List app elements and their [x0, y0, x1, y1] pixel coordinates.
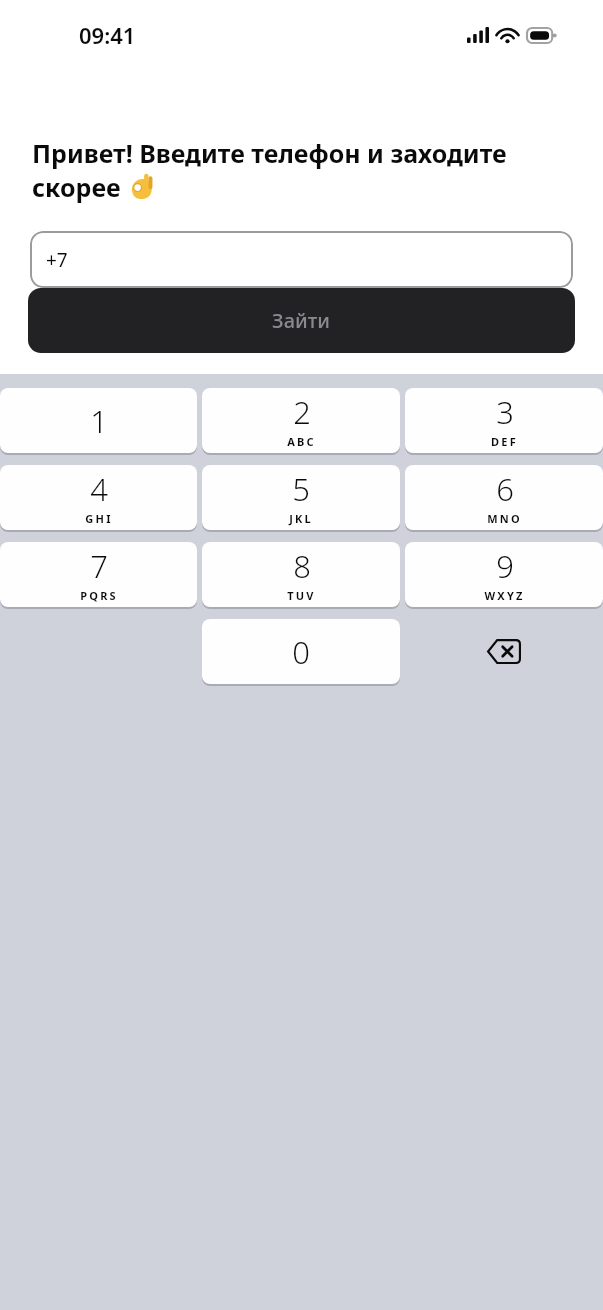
- staticText: 5: [292, 468, 310, 510]
- staticText: Привет! Введите телефон и заходите: [32, 136, 507, 170]
- staticText: 3: [496, 391, 514, 433]
- staticText: GHI: [85, 511, 113, 526]
- staticText: PQRS: [80, 588, 118, 603]
- staticText: ABC: [287, 434, 316, 449]
- button[interactable]: 2: [202, 388, 400, 453]
- button[interactable]: 9: [405, 542, 603, 607]
- staticText: TUV: [287, 588, 316, 603]
- button[interactable]: Зайти: [28, 288, 575, 353]
- staticText: DEF: [491, 434, 518, 449]
- button[interactable]: 3: [405, 388, 603, 453]
- button[interactable]: 0: [202, 619, 400, 684]
- staticText: 7: [90, 545, 108, 587]
- button[interactable]: 6: [405, 465, 603, 530]
- staticText: 1: [90, 400, 108, 442]
- staticText: 09:41: [79, 20, 136, 50]
- staticText: Зайти: [272, 307, 331, 334]
- button[interactable]: 5: [202, 465, 400, 530]
- staticText: скорее: [32, 170, 128, 204]
- staticText: 9: [496, 545, 514, 587]
- button[interactable]: 1: [0, 388, 197, 453]
- staticText: +7: [46, 247, 68, 273]
- staticText: WXYZ: [484, 588, 525, 603]
- staticText: 2: [293, 391, 311, 433]
- button[interactable]: 8: [202, 542, 400, 607]
- button[interactable]: Backspace: [405, 619, 603, 684]
- button[interactable]: 7: [0, 542, 197, 607]
- staticText: JKL: [289, 511, 313, 526]
- staticText: 6: [496, 468, 514, 510]
- staticText: MNO: [487, 511, 522, 526]
- staticText: 4: [90, 468, 108, 510]
- button[interactable]: 4: [0, 465, 197, 530]
- staticText: 0: [292, 631, 310, 673]
- staticText: 8: [293, 545, 311, 587]
- button[interactable]: +7: [30, 231, 573, 288]
